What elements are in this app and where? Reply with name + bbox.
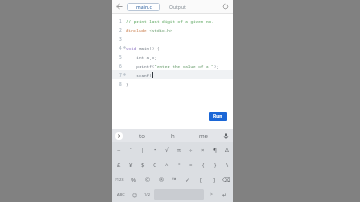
button[interactable]: Output	[164, 3, 190, 11]
button[interactable]: |	[137, 142, 149, 157]
button[interactable]: main.c	[127, 3, 160, 11]
button[interactable]: ™	[168, 172, 181, 187]
button[interactable]: ¥	[125, 157, 137, 172]
staticText: 7	[119, 72, 122, 78]
staticText: Output	[169, 4, 186, 11]
staticText: to	[139, 132, 145, 140]
staticText: ¶	[213, 146, 217, 154]
button[interactable]: ?123	[112, 172, 126, 187]
button[interactable]: `	[125, 142, 137, 157]
staticText: ✓	[185, 176, 191, 183]
staticText: ®	[159, 176, 164, 184]
button[interactable]: £	[112, 157, 125, 172]
staticText: ABC	[117, 192, 125, 197]
button[interactable]: ×	[197, 142, 209, 157]
staticText: £	[117, 161, 121, 169]
button[interactable]: ~	[112, 142, 125, 157]
button[interactable]: {	[197, 157, 209, 172]
staticText: >	[210, 191, 213, 198]
staticText: // print last digit of a given no.	[126, 18, 214, 24]
button[interactable]: ©	[140, 172, 154, 187]
button[interactable]: ¶	[209, 142, 221, 157]
staticText: 3	[119, 36, 122, 42]
button[interactable]: Enter	[217, 187, 233, 202]
staticText: 6	[119, 63, 122, 69]
button[interactable]: >	[205, 187, 217, 202]
staticText: |	[141, 146, 145, 154]
button[interactable]: %	[126, 172, 140, 187]
button[interactable]: $	[137, 157, 149, 172]
staticText: ™	[172, 176, 177, 184]
button[interactable]: ÷	[185, 142, 197, 157]
button[interactable]: 1/2	[141, 187, 153, 202]
button[interactable]: ✓	[181, 172, 194, 187]
staticText: ☺	[132, 192, 138, 198]
button[interactable]: •	[149, 142, 161, 157]
button[interactable]: ABC	[112, 187, 129, 202]
button[interactable]: °	[173, 157, 185, 172]
staticText: scanf(	[126, 72, 152, 78]
button[interactable]: More suggestions	[112, 129, 126, 142]
button[interactable]: \	[221, 157, 233, 172]
button[interactable]: Back	[112, 0, 127, 13]
staticText: ~	[117, 146, 121, 154]
staticText: ^	[165, 161, 169, 169]
staticText: main.c	[136, 4, 152, 11]
button[interactable]: Refresh	[218, 0, 233, 13]
staticText: Δ	[225, 146, 229, 154]
staticText: ÷	[189, 146, 193, 154]
staticText: 5	[119, 54, 122, 60]
staticText: ?123	[115, 177, 124, 182]
staticText: ]	[213, 176, 215, 184]
button[interactable]: √	[161, 142, 173, 157]
button[interactable]: }	[209, 157, 221, 172]
staticText: }	[126, 81, 129, 87]
staticText: ×	[201, 146, 205, 154]
button[interactable]: ^	[161, 157, 173, 172]
staticText: °	[178, 161, 181, 169]
staticText: ¥	[129, 161, 133, 169]
button[interactable]: [	[194, 172, 207, 187]
button[interactable]: Run	[209, 112, 227, 121]
staticText: ¢	[153, 161, 157, 169]
staticText: ↵	[222, 191, 228, 198]
staticText: ⌫	[222, 176, 231, 183]
staticText: printf("enter the value of a ");	[126, 63, 219, 69]
staticText: }	[214, 161, 217, 169]
button[interactable]: me	[188, 129, 219, 142]
button[interactable]: =	[185, 157, 197, 172]
staticText: 2	[119, 27, 122, 33]
button[interactable]: Emoji	[129, 187, 141, 202]
staticText: int a,x;	[126, 54, 157, 60]
staticText: √	[165, 146, 169, 153]
staticText: =	[189, 161, 193, 169]
staticText: π	[177, 146, 181, 154]
button[interactable]: ]	[207, 172, 220, 187]
button[interactable]: h	[157, 129, 188, 142]
staticText: 8	[119, 81, 122, 87]
staticText: %	[131, 176, 136, 184]
staticText: 4	[119, 45, 122, 51]
staticText: Run	[213, 113, 223, 120]
button[interactable]: π	[173, 142, 185, 157]
button[interactable]: Voice input	[219, 129, 233, 142]
staticText: `	[130, 146, 132, 154]
staticText: \	[226, 161, 229, 169]
button[interactable]: ¢	[149, 157, 161, 172]
staticText: void main() {	[126, 45, 160, 51]
button[interactable]: Δ	[221, 142, 233, 157]
button[interactable]: ⌫	[220, 172, 233, 187]
staticText: ©	[145, 176, 150, 184]
staticText: me	[199, 132, 208, 140]
staticText: [	[200, 176, 202, 184]
staticText: {	[202, 161, 205, 169]
staticText: #include <stdio.h>	[126, 27, 173, 33]
staticText: $	[141, 161, 145, 169]
button[interactable]: to	[126, 129, 157, 142]
staticText: h	[171, 132, 175, 140]
button[interactable]: ®	[154, 172, 168, 187]
staticText: 1	[119, 18, 122, 24]
staticText: 1/2	[144, 192, 151, 197]
staticText: •	[154, 146, 157, 154]
